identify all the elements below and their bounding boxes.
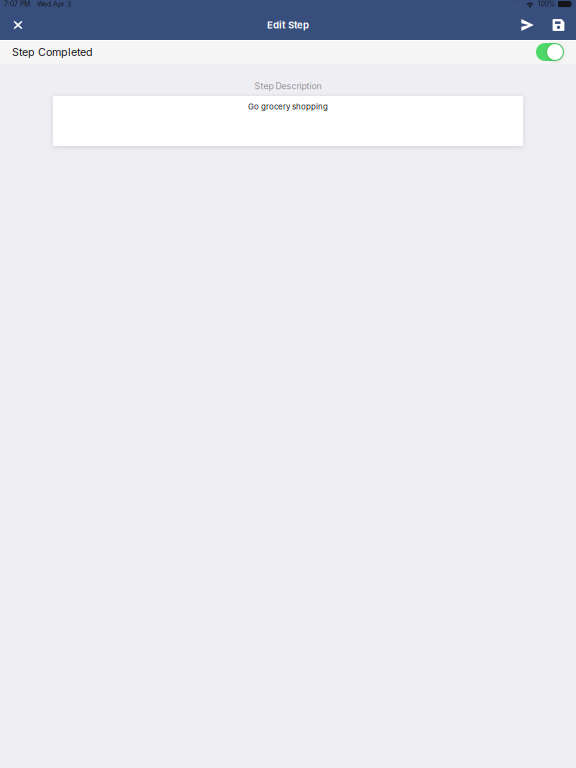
staticText: Step Description (254, 81, 321, 91)
button[interactable]: Save (543, 18, 574, 32)
staticText: Go grocery shopping (248, 102, 328, 111)
button[interactable]: Step Completed (0, 40, 576, 64)
staticText: 100% (537, 0, 555, 8)
staticText: Wed Apr 3 (37, 0, 71, 8)
button[interactable]: Close (0, 18, 36, 32)
staticText: Step Completed (12, 45, 93, 58)
staticText: Edit Step (267, 19, 309, 31)
button[interactable]: Send (512, 18, 543, 32)
staticText: 7:07 PM (4, 0, 30, 8)
